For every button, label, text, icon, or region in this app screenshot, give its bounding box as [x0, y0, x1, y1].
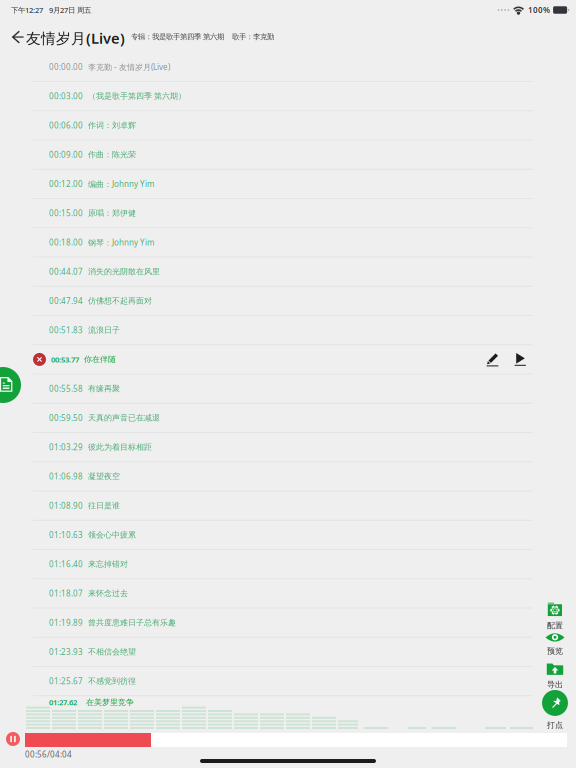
- button[interactable]: 00:44.07: [33, 258, 533, 287]
- button[interactable]: 00:03.00: [33, 82, 533, 111]
- staticText: 00:09.00: [49, 149, 83, 160]
- staticText: 00:53.77: [51, 354, 79, 365]
- button[interactable]: 00:09.00: [33, 141, 533, 170]
- staticText: 在美梦里竞争: [86, 697, 134, 707]
- button[interactable]: 暂停: [6, 732, 20, 746]
- button[interactable]: 00:15.00: [33, 199, 533, 228]
- staticText: 00:06.00: [49, 120, 83, 131]
- button[interactable]: 00:18.00: [33, 228, 533, 257]
- button[interactable]: 01:18.07: [33, 579, 533, 608]
- button[interactable]: 01:19.89: [33, 608, 533, 638]
- button[interactable]: 00:59.50: [33, 404, 533, 433]
- staticText: 有缘再聚: [88, 384, 120, 394]
- staticText: 预览: [547, 646, 563, 656]
- button[interactable]: 编辑: [484, 351, 501, 368]
- staticText: 不感觉到彷徨: [88, 676, 136, 686]
- staticText: 流浪日子: [88, 325, 120, 335]
- staticText: 01:10.63: [49, 529, 83, 540]
- button[interactable]: 返回: [7, 26, 29, 48]
- staticText: 00:55.58: [49, 383, 83, 394]
- staticText: 配置: [547, 620, 563, 631]
- button[interactable]: 00:06.00: [33, 111, 533, 140]
- staticText: 00:44.07: [49, 266, 83, 277]
- button[interactable]: 01:23.93: [33, 638, 533, 667]
- button[interactable]: 00:00.00: [33, 53, 533, 82]
- staticText: 作词：刘卓辉: [88, 120, 136, 130]
- button[interactable]: 00:51.83: [33, 316, 533, 345]
- staticText: 00:47.94: [49, 295, 83, 306]
- button[interactable]: 00:55.58: [33, 375, 533, 404]
- staticText: 01:18.07: [49, 588, 83, 599]
- staticText: 导出: [547, 679, 563, 690]
- staticText: 曾共度患难日子总有乐趣: [88, 618, 176, 628]
- staticText: 歌手：李克勤: [232, 32, 274, 41]
- button[interactable]: 01:08.90: [33, 492, 533, 521]
- staticText: 01:25.67: [49, 676, 83, 687]
- button[interactable]: 导出: [534, 664, 576, 689]
- staticText: 00:18.00: [49, 237, 83, 248]
- staticText: 100%: [528, 5, 550, 15]
- button[interactable]: 删除: [33, 353, 46, 366]
- button[interactable]: 配置: [534, 604, 576, 630]
- staticText: 仿佛想不起再面对: [88, 296, 152, 306]
- staticText: 00:00.00: [49, 61, 83, 72]
- staticText: 编曲：Johnny Yim: [88, 178, 154, 189]
- staticText: 钢琴：Johnny Yim: [88, 237, 154, 248]
- staticText: 往日是谁: [88, 501, 120, 511]
- button[interactable]: 01:10.63: [33, 521, 533, 550]
- staticText: 01:03.29: [49, 442, 83, 453]
- button[interactable]: 打点: [534, 691, 576, 729]
- staticText: 打点: [547, 720, 563, 730]
- staticText: 专辑：我是歌手第四季 第六期: [131, 32, 224, 41]
- button[interactable]: 歌词文档: [0, 367, 21, 403]
- staticText: 01:27.62: [49, 697, 77, 707]
- staticText: 00:51.83: [49, 325, 83, 336]
- staticText: 凝望夜空: [88, 471, 120, 481]
- button[interactable]: 00:47.94: [33, 287, 533, 316]
- staticText: 消失的光阴散在风里: [88, 267, 160, 277]
- staticText: 00:56/04:04: [25, 749, 72, 760]
- staticText: 01:08.90: [49, 500, 83, 511]
- button[interactable]: 00:12.00: [33, 170, 533, 199]
- staticText: 原唱：郑伊健: [88, 208, 136, 218]
- staticText: 友情岁月(Live): [26, 28, 125, 48]
- staticText: 来忘掉错对: [88, 559, 128, 569]
- button[interactable]: 01:16.40: [33, 550, 533, 579]
- staticText: 00:12.00: [49, 178, 83, 189]
- staticText: 天真的声音已在减退: [88, 413, 160, 423]
- staticText: 01:16.40: [49, 559, 83, 570]
- staticText: 你在伴随: [84, 354, 116, 364]
- button[interactable]: 01:06.98: [33, 462, 533, 491]
- staticText: 00:03.00: [49, 91, 83, 102]
- button[interactable]: 预览: [534, 632, 576, 655]
- staticText: 下午12:27: [11, 5, 43, 15]
- staticText: 01:06.98: [49, 471, 83, 482]
- staticText: 来怀念过去: [88, 588, 128, 598]
- staticText: 01:23.93: [49, 646, 83, 657]
- staticText: 00:59.50: [49, 412, 83, 423]
- staticText: 李克勤 - 友情岁月(Live): [88, 61, 170, 72]
- staticText: 作曲：陈光荣: [88, 150, 136, 160]
- staticText: 领会心中疲累: [88, 530, 136, 540]
- staticText: 9月27日 周五: [49, 5, 91, 15]
- staticText: 不相信会绝望: [88, 647, 136, 657]
- button[interactable]: 01:03.29: [33, 433, 533, 462]
- staticText: （我是歌手第四季 第六期）: [88, 91, 186, 101]
- staticText: 00:15.00: [49, 208, 83, 219]
- button[interactable]: 01:25.67: [33, 667, 533, 696]
- button[interactable]: 播放: [512, 351, 528, 367]
- staticText: 彼此为着目标相距: [88, 442, 152, 452]
- staticText: 01:19.89: [49, 617, 83, 628]
